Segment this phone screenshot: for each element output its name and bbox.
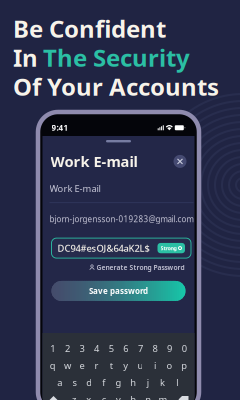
staticText: Of Your Accounts <box>13 71 219 102</box>
staticText: r <box>95 359 99 372</box>
button[interactable]: n <box>141 391 156 400</box>
staticText: 9:41 <box>51 122 68 133</box>
button[interactable]: x <box>81 391 96 400</box>
staticText: s <box>72 376 76 389</box>
button[interactable]: b <box>126 391 141 400</box>
button[interactable]: 1 <box>45 340 60 357</box>
staticText: 2 <box>65 342 70 355</box>
staticText: Work E-mail <box>49 182 100 195</box>
staticText: Save password <box>89 286 148 296</box>
button[interactable]: 0 <box>177 340 191 357</box>
staticText: q <box>50 359 56 372</box>
button[interactable]: z <box>66 391 81 400</box>
staticText: The Security <box>43 42 190 73</box>
button[interactable]: Save password <box>51 281 185 301</box>
staticText: u <box>137 359 143 372</box>
button[interactable]: 9 <box>162 340 177 357</box>
button[interactable]: h <box>126 374 140 391</box>
staticText: Strong <box>160 245 176 252</box>
staticText: d <box>86 376 92 389</box>
button[interactable]: 2 <box>60 340 75 357</box>
staticText: c <box>102 393 106 400</box>
staticText: DC94#esOJ&64aK2L$ <box>57 242 149 254</box>
staticText: m <box>159 393 168 400</box>
staticText: Be Confident <box>13 13 166 44</box>
button[interactable]: q <box>45 357 60 374</box>
staticText: g <box>115 376 121 389</box>
staticText: o <box>167 359 173 372</box>
staticText: 9 <box>167 342 172 355</box>
button[interactable]: g <box>111 374 126 391</box>
button[interactable]: Delete <box>175 391 191 400</box>
staticText: 8 <box>152 342 157 355</box>
staticText: Work E-mail <box>50 152 137 171</box>
staticText: 4 <box>94 342 99 355</box>
button[interactable]: y <box>118 357 133 374</box>
button[interactable]: 8 <box>148 340 162 357</box>
staticText: In <box>13 42 38 73</box>
staticText: k <box>160 376 165 389</box>
staticText: 1 <box>50 342 55 355</box>
button[interactable]: o <box>162 357 177 374</box>
button[interactable]: l <box>170 374 184 391</box>
staticText: z <box>72 393 76 400</box>
button[interactable]: s <box>67 374 82 391</box>
button[interactable]: p <box>177 357 191 374</box>
staticText: 7 <box>138 342 143 355</box>
staticText: 3 <box>79 342 84 355</box>
staticText: f <box>102 376 105 389</box>
button[interactable]: e <box>75 357 89 374</box>
staticText: 0 <box>182 342 187 355</box>
button[interactable]: i <box>148 357 162 374</box>
staticText: h <box>130 376 136 389</box>
button[interactable]: 6 <box>118 340 133 357</box>
button[interactable]: j <box>140 374 155 391</box>
button[interactable]: Close <box>173 155 186 168</box>
staticText: l <box>176 376 178 389</box>
button[interactable]: 5 <box>104 340 118 357</box>
staticText: y <box>123 359 128 372</box>
staticText: 5 <box>109 342 114 355</box>
staticText: p <box>181 359 187 372</box>
button[interactable]: f <box>96 374 111 391</box>
staticText: w <box>64 359 71 372</box>
staticText: x <box>86 393 91 400</box>
staticText: b <box>130 393 136 400</box>
staticText: e <box>79 359 84 372</box>
button[interactable]: r <box>89 357 104 374</box>
button[interactable]: m <box>156 391 170 400</box>
button[interactable]: w <box>60 357 75 374</box>
staticText: i <box>154 359 156 372</box>
button[interactable]: c <box>96 391 111 400</box>
button[interactable]: k <box>155 374 170 391</box>
staticText: j <box>147 376 149 389</box>
button[interactable]: 3 <box>75 340 89 357</box>
button[interactable]: 4 <box>89 340 104 357</box>
button[interactable]: d <box>82 374 96 391</box>
button[interactable]: a <box>52 374 67 391</box>
button[interactable]: v <box>111 391 126 400</box>
staticText: 6 <box>123 342 128 355</box>
staticText: a <box>57 376 62 389</box>
staticText: t <box>110 359 113 372</box>
staticText: n <box>145 393 151 400</box>
staticText: Generate Strong Password <box>96 263 184 272</box>
staticText: v <box>116 393 121 400</box>
button[interactable]: u <box>133 357 148 374</box>
button[interactable]: 7 <box>133 340 148 357</box>
button[interactable]: Shift <box>45 391 61 400</box>
staticText: bjorn-jorgensson-019283@gmail.com <box>49 214 193 224</box>
button[interactable]: t <box>104 357 118 374</box>
